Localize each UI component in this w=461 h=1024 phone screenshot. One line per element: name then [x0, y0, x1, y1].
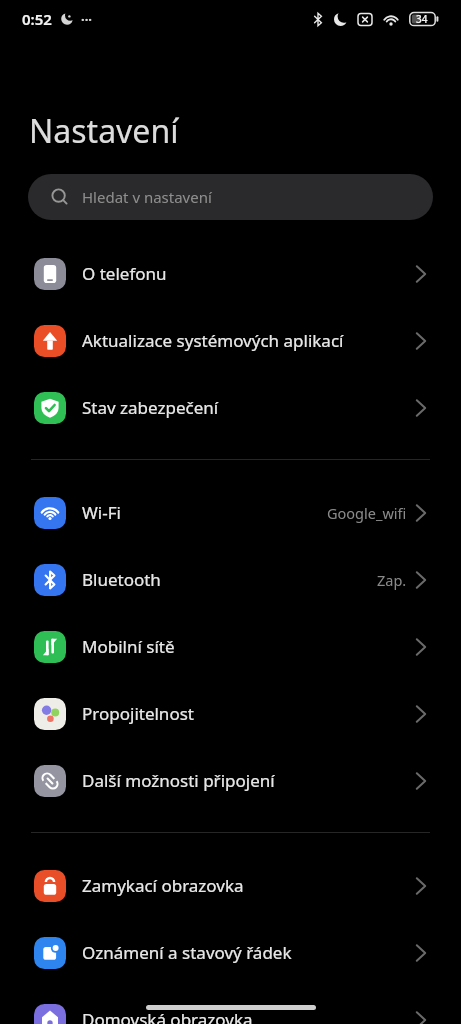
button[interactable]: Zamykací obrazovka: [0, 852, 461, 919]
staticText: Hledat v nastavení: [82, 187, 212, 207]
button[interactable]: Stav zabezpečení: [0, 374, 461, 441]
staticText: Mobilní sítě: [82, 635, 175, 658]
staticText: Další možnosti připojení: [82, 769, 275, 792]
button[interactable]: Bluetooth: [0, 546, 461, 613]
button[interactable]: Další možnosti připojení: [0, 747, 461, 814]
staticText: Zamykací obrazovka: [82, 874, 244, 897]
button[interactable]: Domovská obrazovka: [0, 986, 461, 1024]
staticText: Wi-Fi: [82, 501, 121, 524]
staticText: Zap.: [377, 570, 407, 590]
staticText: 0:52: [22, 9, 52, 29]
button[interactable]: Oznámení a stavový řádek: [0, 919, 461, 986]
staticText: Stav zabezpečení: [82, 396, 219, 419]
staticText: O telefonu: [82, 262, 167, 285]
staticText: Propojitelnost: [82, 702, 194, 725]
staticText: 34: [416, 12, 428, 26]
button[interactable]: Propojitelnost: [0, 680, 461, 747]
staticText: Bluetooth: [82, 568, 161, 591]
staticText: ···: [81, 10, 92, 28]
staticText: Google_wifi: [327, 503, 407, 523]
staticText: Oznámení a stavový řádek: [82, 941, 292, 964]
staticText: Nastavení: [29, 109, 179, 153]
button[interactable]: Hledat v nastavení: [28, 174, 433, 220]
staticText: Aktualizace systémových aplikací: [82, 329, 344, 352]
button[interactable]: Wi-Fi: [0, 479, 461, 546]
button[interactable]: O telefonu: [0, 240, 461, 307]
staticText: Domovská obrazovka: [82, 1008, 253, 1024]
button[interactable]: Aktualizace systémových aplikací: [0, 307, 461, 374]
button[interactable]: Mobilní sítě: [0, 613, 461, 680]
